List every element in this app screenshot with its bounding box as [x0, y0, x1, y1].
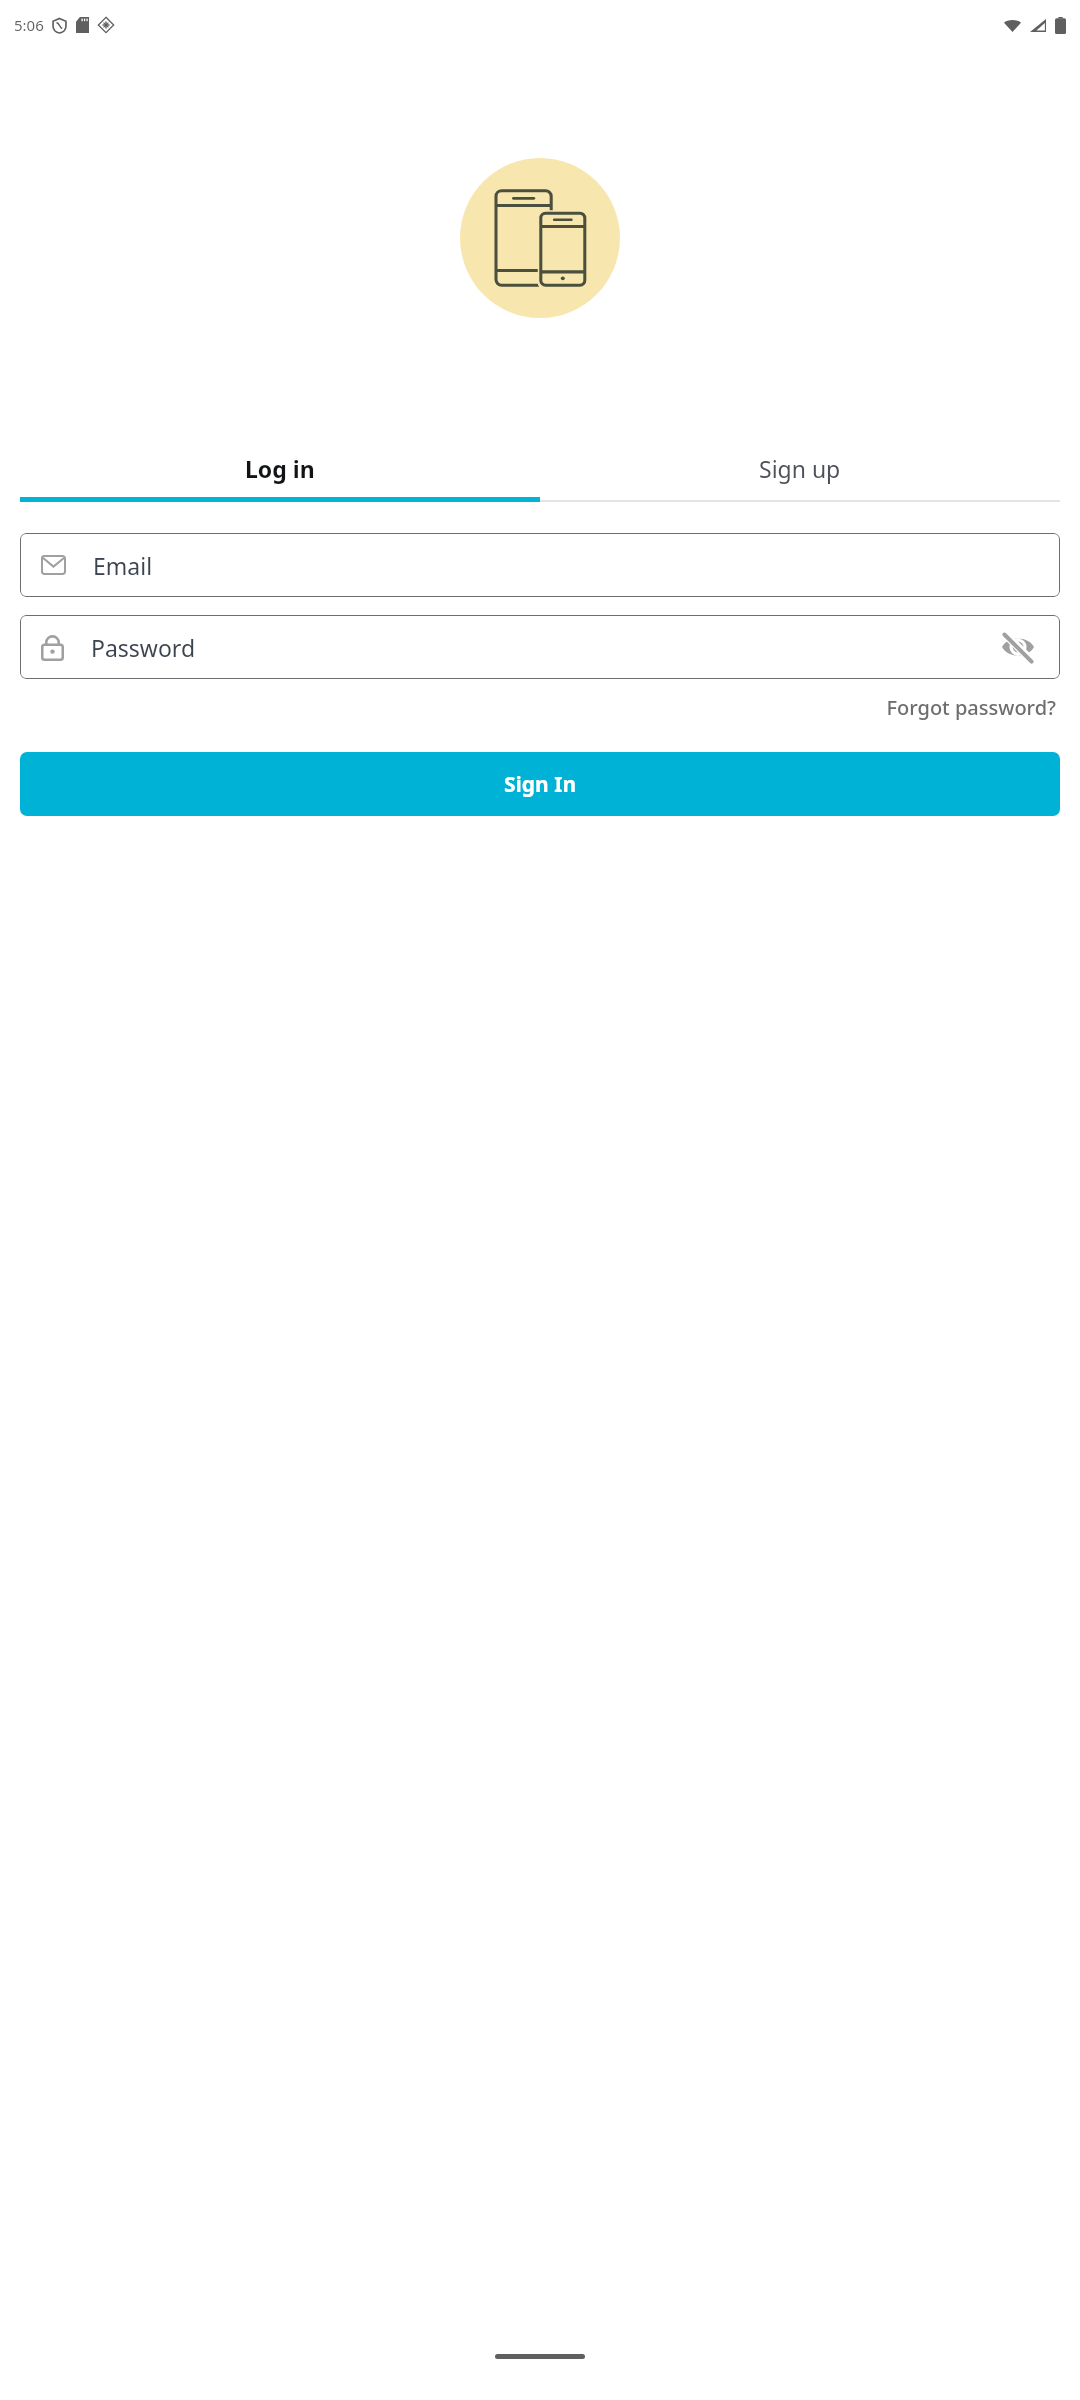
staticText: Sign In — [504, 770, 577, 799]
button[interactable]: Sign In — [20, 752, 1060, 816]
button[interactable]: Password — [20, 615, 1060, 679]
staticText: Forgot password? — [886, 694, 1056, 721]
button[interactable]: Show password — [990, 619, 1046, 675]
button[interactable]: Email — [20, 533, 1060, 597]
staticText: Sign up — [759, 453, 841, 484]
staticText: Email — [93, 550, 153, 581]
staticText: Log in — [245, 453, 315, 484]
button[interactable]: Sign up — [540, 439, 1060, 497]
staticText: 5:06 — [14, 15, 44, 35]
staticText: Password — [91, 632, 196, 663]
button[interactable]: Forgot password? — [882, 684, 1060, 731]
button[interactable]: Log in — [20, 439, 540, 497]
